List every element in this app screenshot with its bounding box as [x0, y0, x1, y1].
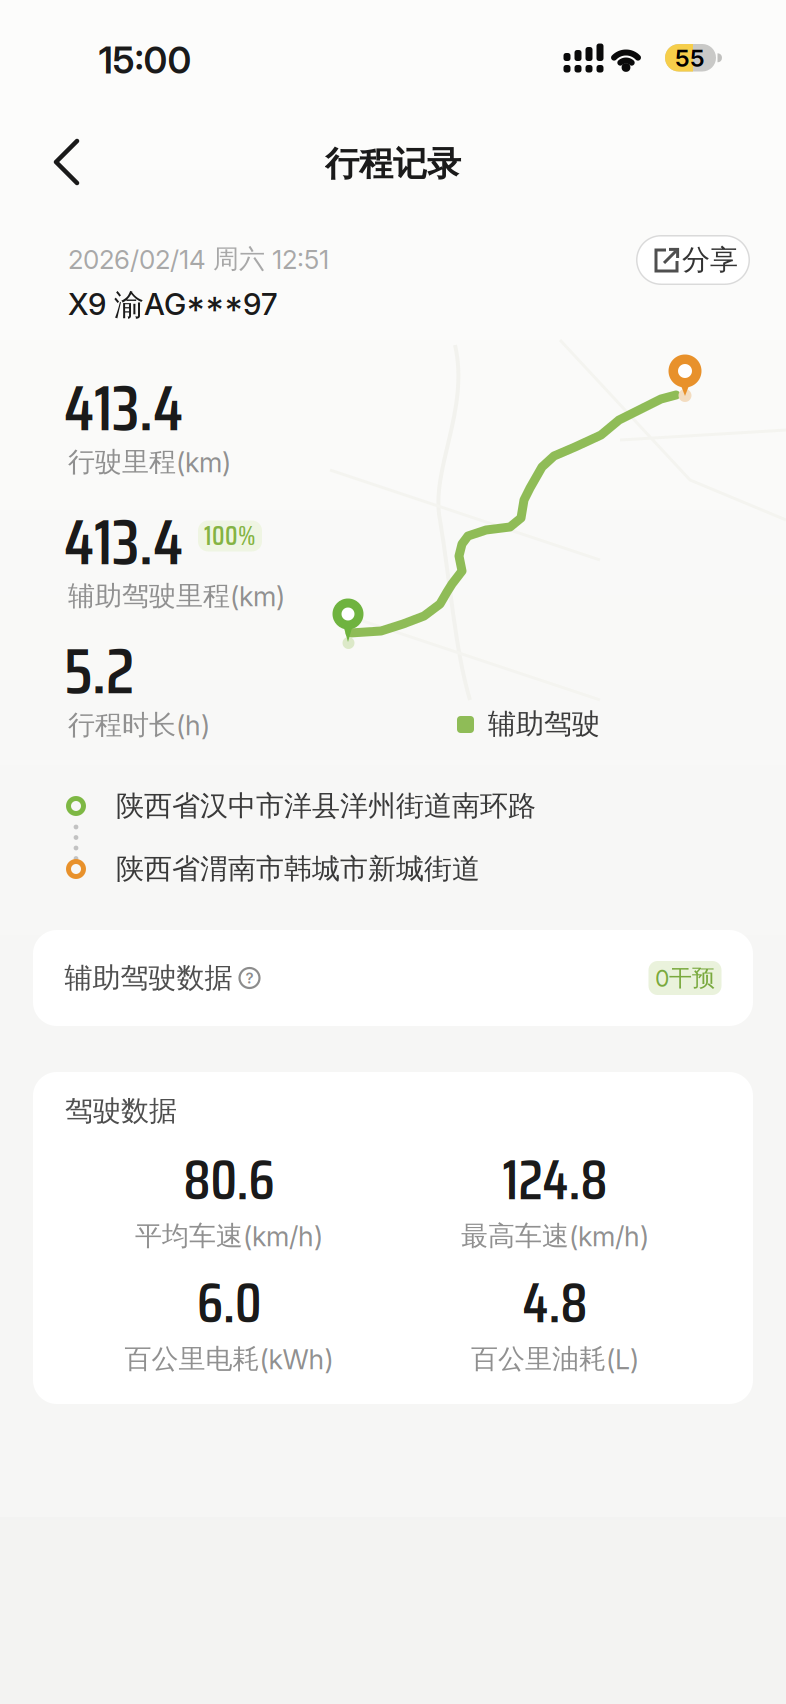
staticText: 平均车速(km/h)	[135, 1219, 323, 1253]
staticText: 55	[675, 43, 705, 72]
staticText: 辅助驾驶数据	[64, 960, 232, 996]
staticText: 413.4	[64, 358, 183, 458]
staticText: 最高车速(km/h)	[461, 1219, 649, 1253]
staticText: 百公里油耗(L)	[471, 1342, 639, 1376]
staticText: 陕西省汉中市洋县洋州街道南环路	[116, 788, 536, 824]
staticText: 2026/02/14 周六 12:51	[68, 243, 329, 275]
staticText: 辅助驾驶里程(km)	[68, 579, 285, 613]
staticText: 陕西省渭南市韩城市新城街道	[116, 851, 480, 887]
staticText: 驾驶数据	[65, 1093, 177, 1129]
staticText: 80.6	[183, 1137, 274, 1223]
staticText: 0干预	[655, 963, 715, 992]
staticText: 分享	[682, 242, 738, 278]
staticText: 413.4	[64, 492, 183, 592]
staticText: 6.0	[197, 1260, 261, 1346]
staticText: 行程时长(h)	[68, 708, 210, 742]
staticText: 行驶里程(km)	[68, 445, 231, 479]
staticText: 4.8	[522, 1260, 587, 1346]
button[interactable]: Back	[35, 130, 99, 194]
staticText: 行程记录	[325, 143, 461, 185]
staticText: 5.2	[64, 621, 134, 721]
button[interactable]: Help	[238, 967, 260, 989]
staticText: 100%	[204, 515, 256, 556]
staticText: ?	[245, 969, 253, 987]
staticText: X9 渝AG***97	[68, 286, 278, 324]
staticText: 15:00	[98, 38, 191, 82]
button[interactable]: 分享	[636, 235, 750, 285]
staticText: 辅助驾驶	[488, 706, 600, 742]
staticText: 124.8	[502, 1137, 607, 1223]
staticText: 百公里电耗(kWh)	[124, 1342, 333, 1376]
